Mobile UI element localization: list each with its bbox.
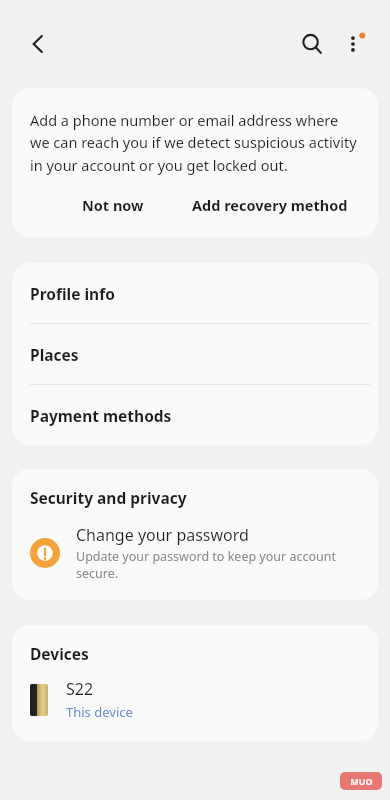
button[interactable]: Not now — [70, 187, 156, 223]
button[interactable]: Places — [12, 324, 378, 385]
staticText: MUO — [350, 775, 373, 787]
button[interactable]: Search — [290, 22, 334, 66]
staticText: Places — [30, 344, 79, 365]
button[interactable]: Back — [16, 22, 60, 66]
staticText: Not now — [82, 195, 144, 215]
staticText: Devices — [30, 643, 89, 664]
staticText: S22 — [66, 678, 94, 700]
button[interactable]: Change your password — [12, 524, 378, 582]
staticText: This device — [66, 703, 133, 721]
staticText: Payment methods — [30, 405, 172, 426]
button[interactable]: S22 — [12, 678, 378, 721]
staticText: Add a phone number or email address wher… — [30, 110, 360, 175]
button[interactable]: Add recovery method — [180, 187, 360, 223]
button[interactable]: Payment methods — [12, 385, 378, 445]
staticText: Security and privacy — [30, 487, 187, 508]
button[interactable]: More options — [332, 22, 376, 66]
button[interactable]: Profile info — [12, 263, 378, 324]
staticText: Update your password to keep your accoun… — [76, 548, 360, 582]
staticText: Profile info — [30, 283, 115, 304]
staticText: Change your password — [76, 524, 249, 546]
staticText: Add recovery method — [192, 195, 348, 215]
